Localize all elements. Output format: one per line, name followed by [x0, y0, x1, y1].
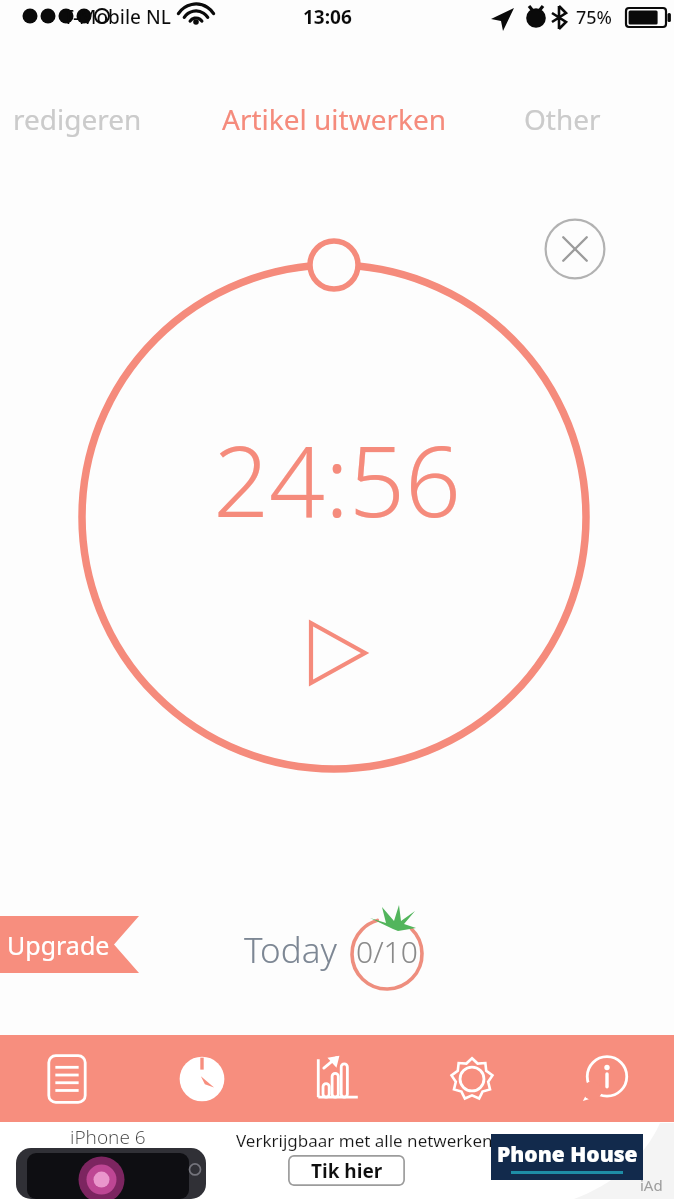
staticText: Verkrijgbaar met alle netwerken	[236, 1129, 493, 1152]
button[interactable]: Tasks	[0, 1035, 134, 1122]
button[interactable]: iPhone 6	[0, 1122, 674, 1199]
staticText: Today	[244, 926, 337, 974]
button[interactable]: Artikel uitwerken	[196, 90, 473, 148]
staticText: iPhone 6	[70, 1124, 146, 1150]
button[interactable]: Statistics	[269, 1035, 404, 1122]
staticText: Phone House	[497, 1140, 638, 1169]
button[interactable]: Settings	[404, 1035, 539, 1122]
button[interactable]: redigeren	[0, 90, 188, 148]
staticText: 13:06	[303, 4, 352, 30]
button[interactable]: Other	[486, 90, 638, 148]
button[interactable]: Upgrade	[0, 916, 139, 973]
staticText: 24:56	[0, 412, 674, 545]
button[interactable]: Timer	[134, 1035, 269, 1122]
staticText: Upgrade	[7, 928, 110, 962]
button[interactable]: Today	[244, 902, 431, 990]
staticText: T-Mobile NL	[63, 4, 171, 30]
staticText: Artikel uitwerken	[222, 100, 447, 138]
staticText: 0/10	[356, 931, 418, 972]
button[interactable]: Start timer	[302, 618, 370, 688]
staticText: redigeren	[13, 100, 142, 138]
staticText: Tik hier	[311, 1158, 383, 1184]
button[interactable]: Info	[539, 1035, 674, 1122]
button[interactable]: Close	[544, 218, 606, 280]
staticText: Other	[524, 100, 601, 138]
button[interactable]: Tik hier	[288, 1155, 405, 1186]
staticText: iAd	[640, 1175, 663, 1195]
staticText: 75%	[576, 5, 612, 30]
